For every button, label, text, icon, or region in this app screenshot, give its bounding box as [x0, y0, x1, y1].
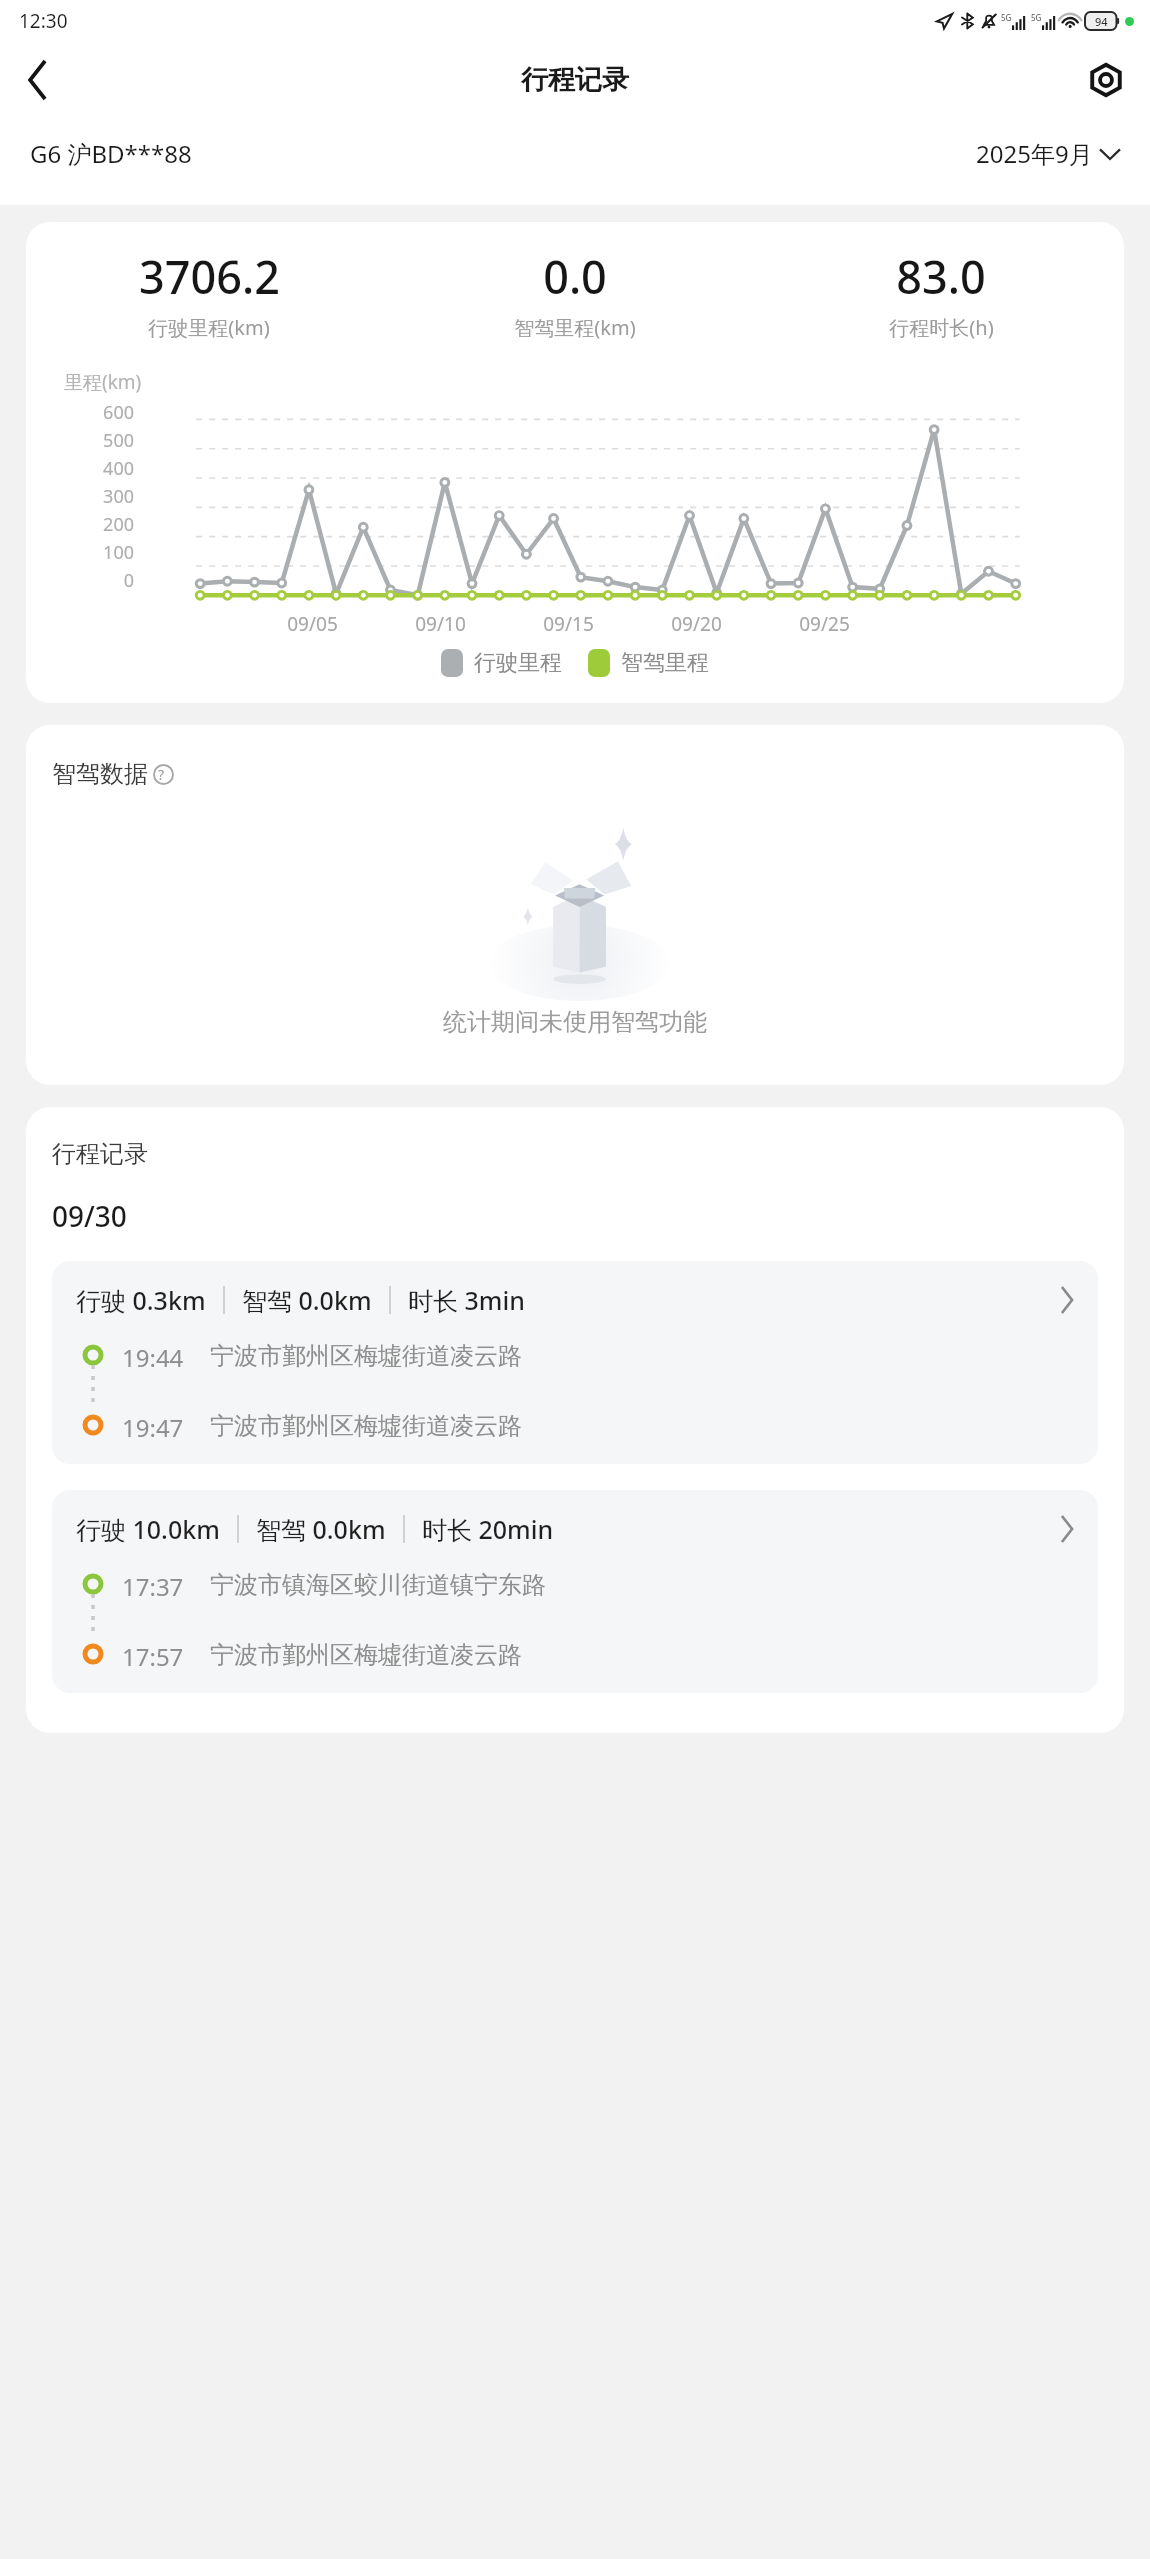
button[interactable]: 2025年9月	[976, 137, 1120, 170]
staticText: 200	[103, 512, 134, 537]
staticText: 行驶里程	[474, 649, 562, 677]
staticText: 智驾里程	[621, 649, 709, 677]
staticText: 智驾 0.0km	[242, 1283, 372, 1317]
staticText: 600	[103, 400, 134, 425]
staticText: 行程时长(h)	[889, 314, 994, 341]
staticText: 5G	[1031, 12, 1042, 23]
button[interactable]: 智驾数据	[52, 759, 181, 789]
staticText: 09/05	[287, 611, 338, 637]
button[interactable]: Settings	[1076, 50, 1136, 110]
staticText: 2025年9月	[976, 137, 1093, 170]
button[interactable]: 行驶 0.3km	[52, 1261, 1098, 1464]
staticText: 智驾 0.0km	[256, 1512, 386, 1546]
staticText: 94	[1095, 14, 1108, 29]
button[interactable]: 行驶 10.0km	[52, 1490, 1098, 1693]
staticText: 行驶 0.3km	[76, 1283, 206, 1317]
staticText: ?	[158, 765, 165, 784]
button[interactable]: Back	[6, 48, 70, 112]
staticText: 400	[103, 456, 134, 481]
staticText: 09/25	[799, 611, 850, 637]
staticText: 时长 20min	[422, 1512, 554, 1546]
staticText: 宁波市鄞州区梅墟街道凌云路	[210, 1411, 522, 1441]
staticText: 09/10	[415, 611, 466, 637]
staticText: 5G	[1001, 12, 1012, 23]
staticText: 宁波市鄞州区梅墟街道凌云路	[210, 1640, 522, 1670]
staticText: 宁波市镇海区蛟川街道镇宁东路	[210, 1570, 546, 1600]
staticText: 09/30	[52, 1197, 127, 1235]
staticText: 行程记录	[521, 63, 629, 97]
staticText: 500	[103, 428, 134, 453]
staticText: 09/15	[543, 611, 594, 637]
staticText: 统计期间未使用智驾功能	[26, 1007, 1124, 1037]
staticText: 12:30	[19, 8, 68, 34]
staticText: 17:37	[122, 1570, 184, 1603]
staticText: 0	[123, 568, 134, 593]
staticText: 智驾数据	[52, 759, 148, 789]
staticText: 17:57	[122, 1640, 184, 1673]
staticText: 100	[103, 540, 134, 565]
staticText: 里程(km)	[64, 369, 142, 395]
staticText: 19:44	[122, 1341, 184, 1374]
staticText: 09/20	[671, 611, 722, 637]
staticText: 智驾里程(km)	[514, 314, 636, 341]
staticText: 83.0	[896, 246, 986, 307]
staticText: 行驶 10.0km	[76, 1512, 220, 1546]
staticText: 0.0	[543, 246, 607, 307]
staticText: G6 沪BD***88	[30, 137, 192, 170]
staticText: 时长 3min	[408, 1283, 525, 1317]
staticText: 3706.2	[139, 246, 280, 307]
staticText: 行程记录	[52, 1139, 148, 1169]
staticText: 19:47	[122, 1411, 184, 1444]
staticText: 宁波市鄞州区梅墟街道凌云路	[210, 1341, 522, 1371]
staticText: 300	[103, 484, 134, 509]
staticText: 行驶里程(km)	[148, 314, 270, 341]
